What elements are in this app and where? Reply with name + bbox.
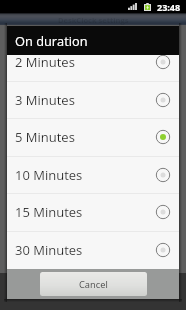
staticText: 15 Minutes xyxy=(15,203,155,221)
button[interactable]: 10 Minutes xyxy=(7,156,179,194)
button[interactable]: 15 Minutes xyxy=(7,193,179,231)
button[interactable]: 30 Minutes xyxy=(7,231,179,269)
staticText: DeskClock settings xyxy=(58,15,129,25)
button[interactable]: 5 Minutes xyxy=(7,118,179,156)
staticText: 10 Minutes xyxy=(15,166,155,184)
other: Signal strength xyxy=(128,3,137,10)
staticText: 3 Minutes xyxy=(15,91,155,109)
button[interactable]: 2 Minutes xyxy=(7,55,179,81)
other: Battery charging xyxy=(144,3,151,11)
button[interactable]: Cancel xyxy=(40,272,147,296)
staticText: On duration xyxy=(15,32,88,49)
staticText: 2 Minutes xyxy=(15,55,155,71)
staticText: 5 Minutes xyxy=(15,128,155,146)
staticText: 30 Minutes xyxy=(15,241,155,259)
staticText: 23:48 xyxy=(157,1,181,13)
staticText: Cancel xyxy=(79,278,108,291)
button[interactable]: 3 Minutes xyxy=(7,81,179,119)
